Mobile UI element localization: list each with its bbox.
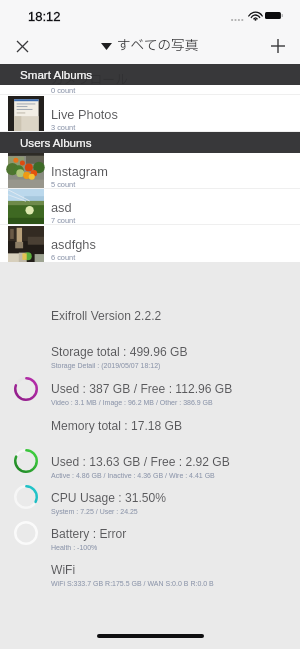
- staticText: カメラロール: [51, 70, 128, 89]
- staticText: Storage Detail : (2019/05/07 18:12): [51, 362, 161, 370]
- staticText: WiFi S:333.7 GB R:175.5 GB / WAN S:0.0 B…: [51, 580, 214, 588]
- staticText: すべての写真: [117, 36, 199, 56]
- staticText: WiFi: [51, 563, 76, 577]
- staticText: 0 count: [51, 86, 76, 94]
- staticText: Health : -100%: [51, 544, 98, 552]
- button[interactable]: asd: [0, 189, 300, 225]
- staticText: asdfghs: [51, 237, 96, 251]
- button[interactable]: Close: [4, 28, 40, 64]
- button[interactable]: カメラロール: [0, 58, 300, 95]
- button[interactable]: Instagram: [0, 153, 300, 189]
- staticText: 6 count: [51, 253, 76, 261]
- button[interactable]: Add album: [260, 28, 296, 64]
- button[interactable]: すべての写真: [101, 28, 221, 64]
- staticText: CPU Usage : 31.50%: [51, 491, 166, 505]
- staticText: Used : 387 GB / Free : 112.96 GB: [51, 382, 233, 396]
- button[interactable]: asdfghs: [0, 225, 300, 262]
- staticText: Video : 3.1 MB / Image : 96.2 MB / Other…: [51, 399, 213, 407]
- staticText: System : 7.25 / User : 24.25: [51, 508, 138, 516]
- staticText: Storage total : 499.96 GB: [51, 345, 188, 359]
- staticText: Active : 4.86 GB / Inactive : 4.36 GB / …: [51, 472, 215, 480]
- staticText: Battery : Error: [51, 527, 127, 541]
- staticText: 7 count: [51, 216, 76, 224]
- staticText: 5 count: [51, 180, 76, 188]
- staticText: 18:12: [28, 9, 61, 24]
- staticText: Smart Albums: [20, 68, 93, 81]
- staticText: Users Albums: [20, 136, 92, 149]
- staticText: Live Photos: [51, 107, 118, 121]
- staticText: Memory total : 17.18 GB: [51, 419, 183, 433]
- staticText: asd: [51, 200, 72, 214]
- staticText: Instagram: [51, 164, 108, 178]
- staticText: Used : 13.63 GB / Free : 2.92 GB: [51, 455, 230, 469]
- staticText: Exifroll Version 2.2.2: [51, 309, 162, 323]
- button[interactable]: Live Photos: [0, 95, 300, 132]
- staticText: 3 count: [51, 123, 76, 131]
